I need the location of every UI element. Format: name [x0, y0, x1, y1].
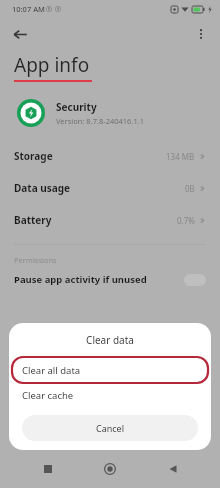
button[interactable]: Back: [158, 454, 188, 484]
button[interactable]: Recents: [33, 454, 63, 484]
staticText: App info: [14, 52, 90, 78]
staticText: Version: 8.7.8-240416.1.1: [56, 116, 144, 126]
staticText: ⓢ: [46, 5, 52, 13]
staticText: Clear all data: [22, 364, 81, 377]
staticText: Cancel: [96, 422, 125, 434]
staticText: 0.7%: [177, 215, 195, 226]
button[interactable]: Battery: [0, 204, 220, 236]
button[interactable]: Home: [95, 454, 125, 484]
button[interactable]: Clear cache: [9, 383, 211, 407]
staticText: Clear cache: [22, 389, 74, 402]
staticText: Storage: [14, 149, 53, 163]
button[interactable]: Security: [0, 98, 220, 128]
staticText: 10:07 AM: [12, 4, 45, 14]
staticText: Permissions: [14, 255, 57, 265]
button[interactable]: Storage: [0, 140, 220, 172]
staticText: Pause app activity if unused: [14, 273, 147, 286]
button[interactable]: Pause app activity if unused: [0, 273, 220, 286]
staticText: Battery: [14, 213, 52, 227]
button[interactable]: Data usage: [0, 172, 220, 204]
staticText: Data usage: [14, 181, 71, 195]
button[interactable]: Cancel: [22, 415, 198, 441]
staticText: Clear data: [86, 333, 134, 347]
staticText: ⓢ: [55, 5, 61, 13]
button[interactable]: Clear all data: [9, 357, 211, 383]
staticText: Security: [56, 100, 97, 114]
staticText: 134 MB: [166, 151, 195, 162]
button[interactable]: Back: [6, 20, 34, 48]
button[interactable]: More options: [188, 21, 214, 47]
staticText: 0B: [185, 183, 195, 194]
